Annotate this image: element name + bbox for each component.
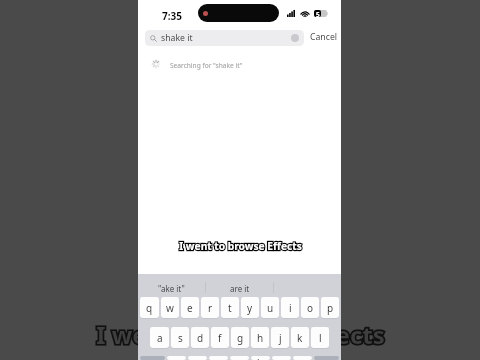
staticText: Searching for "shake it"	[170, 61, 243, 70]
staticText: I went to browse Effects	[96, 318, 385, 351]
staticText: shake it	[161, 32, 193, 44]
staticText: p	[327, 301, 334, 315]
button[interactable]: Clear	[291, 34, 299, 42]
button[interactable]: v	[230, 356, 249, 360]
button[interactable]: are it	[206, 274, 273, 296]
staticText: I went to browse Effects	[179, 239, 302, 253]
button[interactable]: z	[167, 356, 186, 360]
button[interactable]: j	[271, 327, 289, 348]
button[interactable]: h	[251, 327, 269, 348]
staticText: l	[319, 331, 322, 345]
button[interactable]: s	[171, 327, 189, 348]
button[interactable]: m	[293, 356, 312, 360]
staticText: s	[178, 331, 183, 345]
button[interactable]: shake it	[145, 30, 304, 46]
staticText: t	[228, 301, 232, 315]
button[interactable]: l	[311, 327, 329, 348]
staticText: 7:35	[162, 9, 182, 23]
staticText: I went to browse Effects	[96, 318, 385, 351]
button[interactable]: o	[301, 297, 319, 318]
button[interactable]: x	[188, 356, 207, 360]
staticText: w	[166, 301, 174, 315]
staticText: "ake it"	[158, 283, 185, 294]
button[interactable]: c	[209, 356, 228, 360]
staticText: o	[307, 301, 314, 315]
staticText: y	[247, 301, 253, 315]
staticText: Cancel	[310, 31, 338, 43]
button[interactable]: n	[272, 356, 291, 360]
staticText: b	[257, 356, 264, 360]
staticText: d	[197, 331, 204, 345]
staticText: are it	[230, 283, 250, 294]
staticText: q	[146, 301, 153, 315]
button[interactable]: u	[261, 297, 279, 318]
button[interactable]: t	[221, 297, 239, 318]
button[interactable]: a	[150, 327, 169, 348]
button[interactable]: q	[140, 297, 159, 318]
button[interactable]: b	[251, 356, 270, 360]
button[interactable]: y	[241, 297, 259, 318]
button[interactable]: e	[181, 297, 199, 318]
staticText: e	[187, 301, 193, 315]
staticText: h	[257, 331, 264, 345]
staticText: f	[218, 331, 222, 345]
button[interactable]: w	[161, 297, 179, 318]
staticText: i	[289, 301, 292, 315]
button[interactable]: d	[191, 327, 209, 348]
staticText: r	[208, 301, 213, 315]
button[interactable]: "ake it"	[138, 274, 205, 296]
button[interactable]: p	[321, 297, 339, 318]
staticText: k	[297, 331, 303, 345]
button[interactable]: Shift	[140, 356, 165, 360]
button[interactable]: Backspace	[314, 356, 339, 360]
button[interactable]: f	[211, 327, 229, 348]
button[interactable]: g	[231, 327, 249, 348]
staticText: I went to browse Effects	[179, 239, 302, 253]
button[interactable]: i	[281, 297, 299, 318]
button[interactable]: k	[291, 327, 309, 348]
staticText: u	[267, 301, 274, 315]
button[interactable]: Cancel	[310, 31, 338, 43]
staticText: a	[157, 331, 163, 345]
staticText: j	[279, 331, 282, 345]
staticText: g	[237, 331, 244, 345]
staticText: 5	[316, 10, 320, 17]
button[interactable]: r	[201, 297, 219, 318]
